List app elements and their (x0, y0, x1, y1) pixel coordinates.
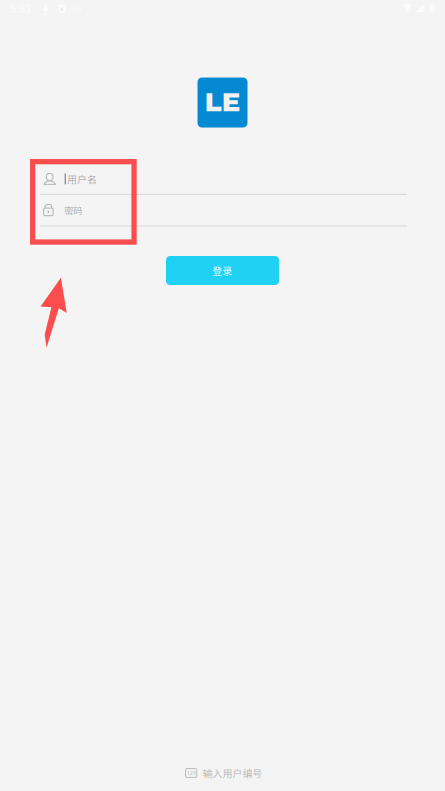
staticText: 登录 (212, 263, 232, 278)
staticText: 用户名 (67, 172, 97, 186)
staticText: 输入用户编号 (202, 766, 262, 780)
staticText: 123 (187, 769, 196, 777)
button[interactable]: 123 (177, 764, 268, 782)
staticText: 密码 (64, 203, 82, 217)
staticText: LE (204, 88, 240, 117)
button[interactable]: 登录 (166, 256, 279, 285)
